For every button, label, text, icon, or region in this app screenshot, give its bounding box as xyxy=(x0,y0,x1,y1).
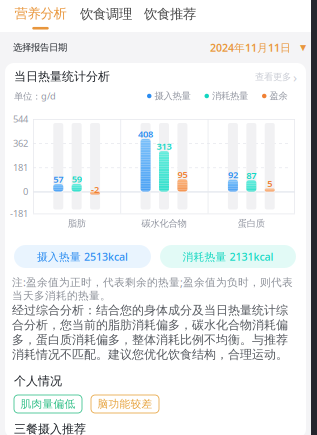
staticText: 单位：g/d xyxy=(14,90,56,102)
staticText: 消耗热量 2131kcal xyxy=(182,249,273,264)
staticText: 59 xyxy=(72,173,82,185)
staticText: 92 xyxy=(228,168,238,181)
staticText: 营养分析 xyxy=(14,5,66,22)
staticText: -2 xyxy=(91,183,99,196)
staticText: 饮食调理 xyxy=(80,6,132,22)
staticText: 查看更多 xyxy=(255,71,291,83)
button[interactable]: 营养分析 xyxy=(13,5,68,30)
staticText: 181 xyxy=(13,161,28,173)
staticText: 5 xyxy=(267,177,272,190)
staticText: 2024年11月11日 xyxy=(210,40,291,55)
staticText: 362 xyxy=(13,137,28,149)
staticText: 摄入热量 xyxy=(154,90,190,102)
staticText: 0 xyxy=(23,185,28,198)
staticText: 碳水化合物 xyxy=(141,218,186,229)
staticText: 肌肉量偏低 xyxy=(20,397,75,410)
staticText: 脑功能较差 xyxy=(97,397,152,410)
staticText: 脂肪 xyxy=(68,218,86,229)
button[interactable]: 选择报告日期 xyxy=(0,32,317,63)
staticText: 个人情况 xyxy=(14,374,62,388)
staticText: 消耗热量 xyxy=(212,90,248,102)
staticText: 87 xyxy=(246,169,256,181)
staticText: 三餐摄入推荐 xyxy=(14,422,86,435)
staticText: 蛋白质 xyxy=(238,218,265,229)
staticText: ▼ xyxy=(300,43,306,52)
staticText: 57 xyxy=(53,173,63,185)
staticText: 313 xyxy=(156,140,171,152)
staticText: › xyxy=(293,68,297,86)
staticText: 经过综合分析：结合您的身体成分及当日热量统计综合分析，您当前的脂肪消耗偏多，碳水… xyxy=(12,303,288,362)
staticText: 544 xyxy=(13,113,28,125)
staticText: 当日热量统计分析 xyxy=(14,69,110,84)
staticText: 选择报告日期 xyxy=(13,42,67,53)
staticText: -181 xyxy=(10,207,28,220)
staticText: 408 xyxy=(138,128,153,140)
staticText: 95 xyxy=(177,168,187,180)
staticText: 盈余 xyxy=(269,90,287,102)
button[interactable]: 饮食调理 xyxy=(79,5,133,23)
staticText: 饮食推荐 xyxy=(144,6,196,22)
staticText: 注:盈余值为正时，代表剩余的热量;盈余值为负时，则代表当天多消耗的热量。 xyxy=(12,275,293,302)
staticText: 摄入热量 2513kcal xyxy=(37,249,128,264)
button[interactable]: 查看更多 xyxy=(237,71,297,83)
button[interactable]: 饮食推荐 xyxy=(143,5,197,23)
